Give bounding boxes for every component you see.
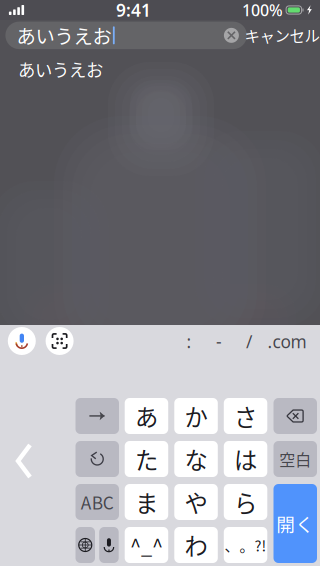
staticText: わ — [185, 528, 208, 562]
button[interactable]: な — [174, 441, 218, 477]
button[interactable]: キャンセル — [251, 22, 313, 49]
staticText: や — [185, 485, 208, 519]
button[interactable]: ^_^ — [125, 527, 168, 563]
staticText: あいうえお — [18, 56, 103, 82]
button[interactable]: 空白 — [273, 441, 317, 477]
staticText: 100% — [242, 0, 283, 21]
button[interactable]: Dictation — [99, 527, 119, 563]
staticText: 開く — [276, 510, 314, 537]
staticText: は — [234, 442, 257, 476]
button[interactable]: ま — [125, 484, 168, 520]
button[interactable]: あいうえお — [0, 51, 320, 87]
staticText: : — [186, 330, 191, 353]
button[interactable]: Delete — [273, 398, 317, 434]
staticText: 、。?! — [225, 534, 267, 556]
staticText: あいうえお — [16, 21, 111, 49]
button[interactable]: .com — [266, 329, 308, 354]
button[interactable]: Undo — [75, 441, 119, 477]
button[interactable]: あ — [125, 398, 168, 434]
button[interactable]: Next candidate — [75, 398, 119, 434]
button[interactable]: 、。?! — [224, 527, 267, 563]
staticText: .com — [267, 330, 306, 353]
button[interactable]: や — [174, 484, 218, 520]
staticText: な — [185, 442, 208, 476]
button[interactable]: : — [177, 329, 201, 354]
button[interactable]: か — [174, 398, 218, 434]
staticText: 空白 — [279, 447, 311, 471]
button[interactable]: Google Lens — [46, 327, 74, 355]
button[interactable]: た — [125, 441, 168, 477]
button[interactable]: - — [207, 329, 231, 354]
staticText: / — [246, 330, 252, 353]
staticText: ら — [234, 485, 257, 519]
staticText: ま — [135, 485, 158, 519]
button[interactable]: Voice search — [8, 327, 36, 355]
button[interactable]: 開く — [273, 484, 317, 563]
staticText: - — [216, 330, 222, 353]
button[interactable]: は — [224, 441, 267, 477]
staticText: ^_^ — [130, 530, 163, 559]
staticText: た — [135, 442, 158, 476]
staticText: 9:41 — [116, 0, 151, 21]
button[interactable]: ABC — [75, 484, 119, 520]
button[interactable]: さ — [224, 398, 267, 434]
button[interactable]: ら — [224, 484, 267, 520]
staticText: さ — [234, 399, 257, 433]
button[interactable]: わ — [174, 527, 218, 563]
staticText: あ — [135, 399, 158, 433]
button[interactable]: Next keyboard — [75, 527, 95, 563]
staticText: キャンセル — [244, 24, 319, 47]
staticText: ABC — [81, 489, 114, 515]
button[interactable]: / — [237, 329, 261, 354]
staticText: か — [185, 399, 208, 433]
